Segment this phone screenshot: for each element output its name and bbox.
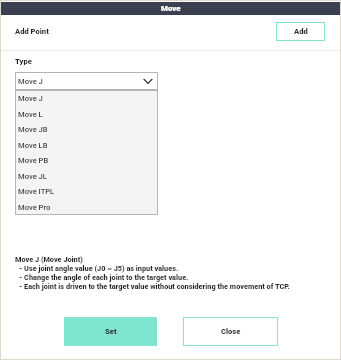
other: Expand type list [142,75,154,87]
staticText: Move L [18,110,43,119]
button[interactable]: Move LB [15,137,158,153]
button[interactable]: Add [276,22,325,41]
button[interactable]: Set [64,317,157,346]
staticText: Type [15,57,32,66]
staticText: Move ITPL [18,187,55,196]
staticText: Move J [18,77,43,86]
button[interactable]: Move L [15,106,158,122]
button[interactable]: Move Pro [15,199,158,215]
button[interactable]: Move J [15,90,158,106]
staticText: Move JL [18,172,47,181]
staticText: Move PB [18,156,49,165]
staticText: Move JB [18,125,48,134]
staticText: Move [161,4,181,13]
button[interactable]: Close [183,317,278,346]
staticText: Add Point [15,27,49,36]
button[interactable]: Move JL [15,168,158,184]
staticText: - Change the angle of each joint to the … [19,273,189,282]
button[interactable]: Move ITPL [15,183,158,199]
staticText: Set [105,327,117,336]
staticText: Move J (Move Joint) [15,255,83,264]
button[interactable]: Move JB [15,121,158,137]
staticText: Move LB [18,141,48,150]
staticText: - Each joint is driven to the target val… [19,282,290,291]
staticText: Move J [18,94,43,103]
button[interactable]: Move J [15,72,158,90]
button[interactable]: Move PB [15,152,158,168]
staticText: Close [221,327,241,336]
staticText: Move Pro [18,203,51,212]
staticText: Add [294,27,308,36]
staticText: - Use joint angle value (J0 ~ J5) as inp… [19,264,179,273]
